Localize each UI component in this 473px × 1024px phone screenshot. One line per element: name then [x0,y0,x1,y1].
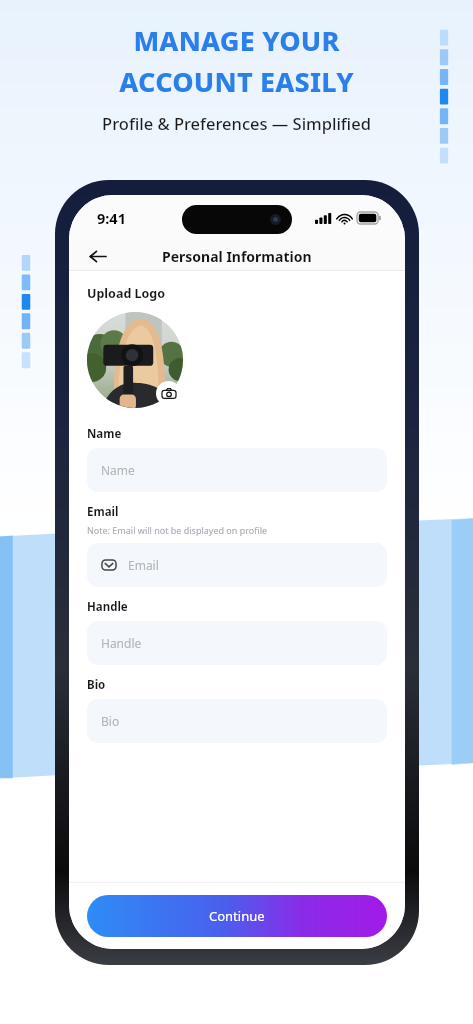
button[interactable]: Change photo [156,381,181,406]
staticText: Profile & Preferences — Simplified [102,112,371,134]
button[interactable]: Continue [87,895,387,937]
staticText: Note: Email will not be displayed on pro… [87,524,268,536]
button[interactable]: Email [87,543,387,587]
staticText: Email [87,504,119,520]
button[interactable]: Handle [87,621,387,665]
button[interactable]: Profile photo [87,312,183,408]
staticText: Upload Logo [87,285,166,302]
staticText: Name [87,426,122,442]
button[interactable]: Name [87,448,387,492]
staticText: ACCOUNT EASILY [119,63,354,100]
staticText: 9:41 [97,208,126,228]
staticText: Email [128,557,159,573]
staticText: Continue [209,907,265,925]
staticText: Handle [101,635,142,651]
staticText: Handle [87,599,128,615]
staticText: Bio [87,677,106,693]
staticText: Name [101,462,135,478]
staticText: Personal Information [162,247,312,266]
staticText: Bio [101,713,120,729]
staticText: MANAGE YOUR [133,22,340,59]
button[interactable]: Bio [87,699,387,743]
button[interactable]: Back [81,241,113,271]
